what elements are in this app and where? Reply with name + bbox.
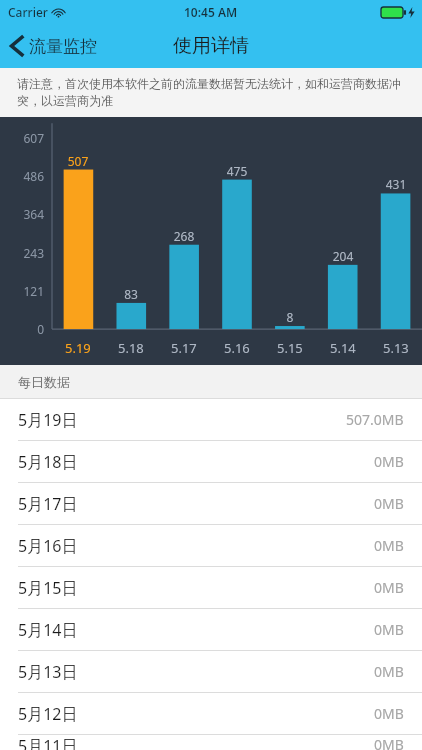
- staticText: 121: [0, 283, 44, 299]
- staticText: 204: [318, 248, 368, 264]
- button[interactable]: 5月14日: [0, 609, 422, 650]
- staticText: 364: [0, 206, 44, 222]
- staticText: 5.18: [118, 339, 144, 357]
- staticText: 5月11日: [18, 735, 78, 750]
- staticText: 0MB: [374, 536, 404, 555]
- staticText: 5.14: [330, 339, 356, 357]
- staticText: 0MB: [374, 704, 404, 723]
- button[interactable]: 5月19日: [0, 399, 422, 440]
- button[interactable]: 5月13日: [0, 651, 422, 692]
- staticText: 流量监控: [29, 36, 97, 57]
- staticText: 5月18日: [18, 451, 78, 473]
- staticText: 5月17日: [18, 493, 78, 515]
- staticText: 8: [265, 309, 315, 325]
- button[interactable]: 5月11日: [0, 735, 422, 750]
- button[interactable]: 5月12日: [0, 693, 422, 734]
- staticText: 0MB: [374, 578, 404, 597]
- staticText: 268: [159, 228, 209, 244]
- staticText: 请注意，首次使用本软件之前的流量数据暂无法统计，如和运营商数据冲突，以运营商为准: [17, 76, 405, 109]
- staticText: 507.0MB: [346, 410, 404, 429]
- staticText: 5月14日: [18, 619, 78, 641]
- staticText: 0MB: [374, 735, 404, 750]
- staticText: 0: [0, 321, 44, 337]
- staticText: 5.13: [383, 339, 409, 357]
- staticText: 486: [0, 168, 44, 184]
- button[interactable]: 5月18日: [0, 441, 422, 482]
- staticText: 使用详情: [173, 34, 249, 58]
- staticText: 0MB: [374, 620, 404, 639]
- button[interactable]: 流量监控: [0, 24, 107, 68]
- staticText: Carrier: [8, 4, 48, 20]
- staticText: 475: [212, 163, 262, 179]
- staticText: 5.15: [277, 339, 303, 357]
- staticText: 0MB: [374, 662, 404, 681]
- staticText: 431: [371, 176, 421, 192]
- staticText: 5.16: [224, 339, 250, 357]
- button[interactable]: 5月16日: [0, 525, 422, 566]
- staticText: 5月15日: [18, 577, 78, 599]
- staticText: 5月16日: [18, 535, 78, 557]
- button[interactable]: 5月17日: [0, 483, 422, 524]
- staticText: 607: [0, 130, 44, 146]
- staticText: 5月13日: [18, 661, 78, 683]
- staticText: 0MB: [374, 452, 404, 471]
- staticText: 5月12日: [18, 703, 78, 725]
- staticText: 83: [106, 286, 156, 302]
- button[interactable]: 5月15日: [0, 567, 422, 608]
- staticText: 507: [53, 153, 103, 169]
- staticText: 10:45 AM: [184, 4, 238, 20]
- staticText: 5.19: [65, 339, 91, 357]
- staticText: 每日数据: [18, 374, 70, 390]
- staticText: 5月19日: [18, 409, 78, 431]
- staticText: 243: [0, 245, 44, 261]
- staticText: 5.17: [171, 339, 197, 357]
- staticText: 0MB: [374, 494, 404, 513]
